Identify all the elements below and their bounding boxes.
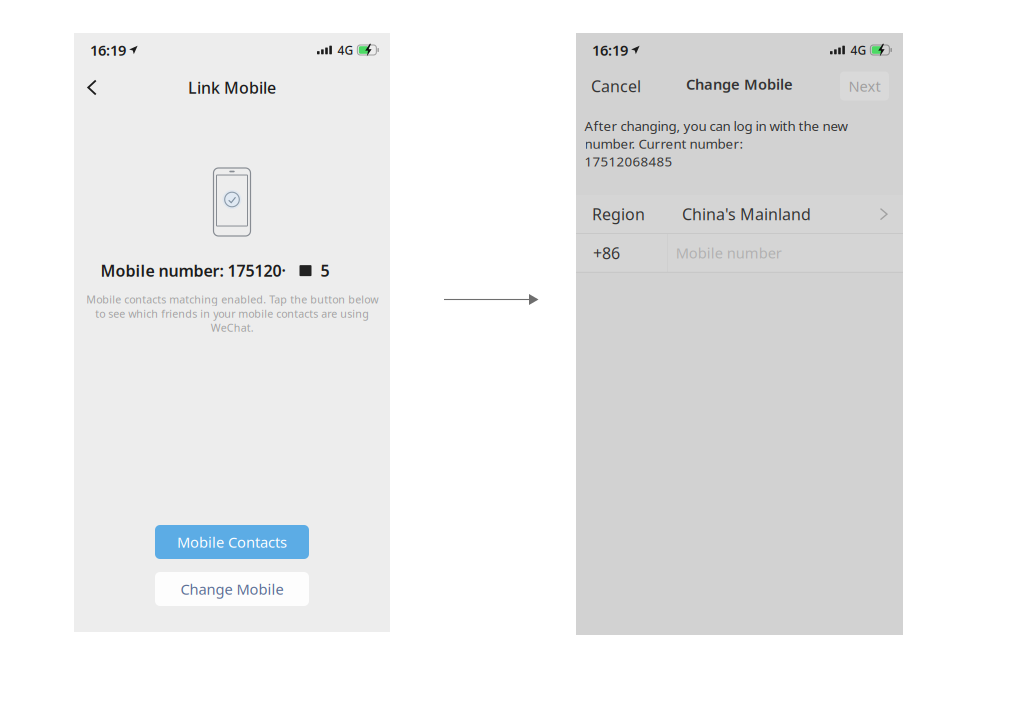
button[interactable]: Region xyxy=(576,195,903,233)
staticText: +86 xyxy=(593,242,620,263)
staticText: Mobile Contacts xyxy=(177,532,287,552)
button[interactable]: Back xyxy=(74,64,110,110)
button[interactable]: Change Mobile xyxy=(155,572,309,606)
staticText: Mobile number xyxy=(676,243,782,263)
staticText: Mobile contacts matching enabled. Tap th… xyxy=(86,292,378,335)
staticText: China's Mainland xyxy=(682,203,811,225)
staticText: Link Mobile xyxy=(188,77,276,98)
staticText: Cancel xyxy=(591,75,641,97)
staticText: 5 xyxy=(320,260,329,281)
staticText: Change Mobile xyxy=(686,74,793,94)
button[interactable]: Cancel xyxy=(576,66,656,106)
staticText: Mobile number: 175120· xyxy=(100,260,285,281)
staticText: Change Mobile xyxy=(180,579,283,599)
staticText: Region xyxy=(592,203,645,225)
button[interactable]: +86 xyxy=(576,234,903,272)
button[interactable]: Mobile Contacts xyxy=(155,525,309,559)
staticText: Next xyxy=(848,76,880,96)
staticText: 16:19 xyxy=(90,40,126,60)
staticText: 4G xyxy=(850,42,866,58)
staticText: 16:19 xyxy=(592,40,628,60)
staticText: 4G xyxy=(337,42,353,58)
button[interactable]: Next xyxy=(840,71,889,100)
staticText: After changing, you can log in with the … xyxy=(584,117,847,170)
